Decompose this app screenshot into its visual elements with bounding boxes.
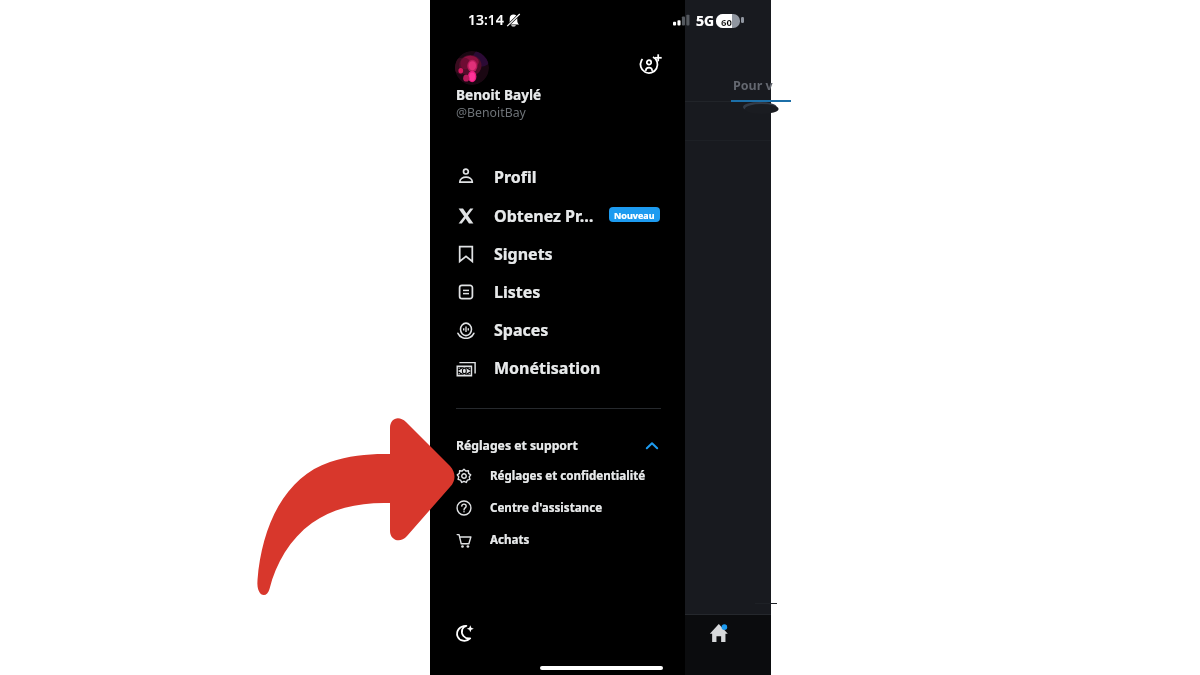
staticText: Pour v xyxy=(733,77,773,94)
staticText: Profil xyxy=(494,166,537,188)
staticText: Réglages et support xyxy=(456,437,578,454)
staticText: Achats xyxy=(490,532,530,548)
button[interactable]: Signets xyxy=(430,235,685,273)
button[interactable]: Obtenez Pr… xyxy=(430,197,685,235)
staticText: Monétisation xyxy=(494,357,601,379)
button[interactable]: Monétisation xyxy=(430,349,685,387)
staticText: 13:14 xyxy=(468,10,504,29)
staticText: Centre d'assistance xyxy=(490,500,603,516)
button[interactable]: Achats xyxy=(430,524,685,556)
button[interactable]: Centre d'assistance xyxy=(430,492,685,524)
staticText: 60 xyxy=(721,16,732,28)
button[interactable]: Spaces xyxy=(430,311,685,349)
button[interactable]: Add account xyxy=(637,50,667,80)
button[interactable]: Profil xyxy=(430,158,685,196)
staticText: Réglages et confidentialité xyxy=(490,468,646,484)
button[interactable]: Profile picture xyxy=(455,51,489,85)
staticText: Spaces xyxy=(494,319,549,341)
button[interactable]: Home xyxy=(685,615,771,675)
button[interactable]: Dark mode xyxy=(447,617,475,645)
staticText: Signets xyxy=(494,243,553,265)
button[interactable]: Pour v xyxy=(729,70,771,102)
staticText: Listes xyxy=(494,281,541,303)
button[interactable]: Listes xyxy=(430,273,685,311)
button[interactable]: Réglages et confidentialité xyxy=(430,460,685,492)
staticText: Nouveau xyxy=(614,209,655,221)
staticText: 5G xyxy=(696,11,715,30)
staticText: Benoit Baylé xyxy=(456,85,542,104)
staticText: @BenoitBay xyxy=(456,104,526,121)
staticText: Obtenez Pr… xyxy=(494,205,594,227)
button[interactable]: Réglages et support xyxy=(430,431,685,460)
